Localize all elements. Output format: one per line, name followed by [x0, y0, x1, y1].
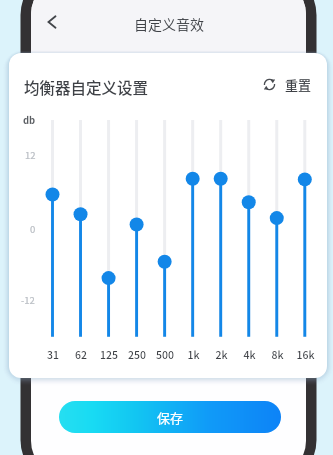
staticText: 1k — [187, 347, 200, 362]
staticText: 12 — [25, 148, 36, 162]
staticText: 8k — [271, 347, 284, 362]
staticText: 2k — [215, 347, 228, 362]
staticText: -12 — [21, 293, 35, 307]
staticText: 0 — [30, 222, 36, 236]
staticText: 16k — [296, 347, 315, 362]
staticText: 62 — [75, 347, 87, 362]
staticText: 125 — [100, 347, 118, 362]
staticText: 250 — [128, 347, 146, 362]
staticText: 自定义音效 — [134, 14, 204, 34]
staticText: 保存 — [157, 408, 184, 427]
staticText: 均衡器自定义设置 — [24, 76, 149, 98]
staticText: 重置 — [285, 75, 312, 94]
staticText: 31 — [47, 347, 59, 362]
button[interactable]: 重置 — [263, 75, 312, 94]
button[interactable]: 保存 — [59, 401, 281, 433]
staticText: 500 — [156, 347, 174, 362]
button[interactable]: Back — [38, 8, 65, 35]
staticText: 4k — [243, 347, 256, 362]
staticText: db — [23, 113, 36, 127]
